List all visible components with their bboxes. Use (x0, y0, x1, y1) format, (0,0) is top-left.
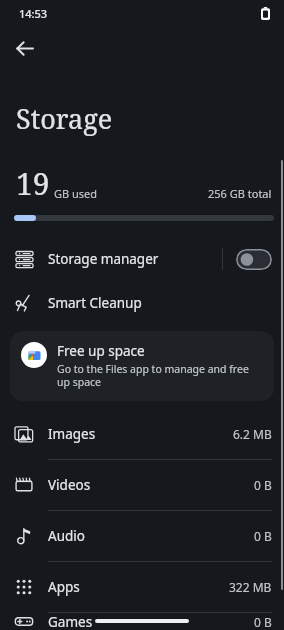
button[interactable]: Storage manager toggle (236, 249, 272, 270)
staticText: 0 B (254, 528, 272, 544)
staticText: 322 MB (229, 579, 272, 595)
staticText: Apps (48, 578, 80, 596)
staticText: Storage manager (48, 250, 159, 268)
button[interactable]: Games (0, 613, 284, 630)
staticText: 0 B (254, 477, 272, 493)
staticText: GB used (54, 186, 98, 201)
button[interactable]: Audio (0, 511, 284, 561)
button[interactable]: Videos (0, 460, 284, 510)
staticText: Games (48, 613, 93, 630)
staticText: 14:53 (19, 6, 48, 21)
staticText: 0 B (254, 614, 272, 630)
button[interactable]: Apps (0, 562, 284, 612)
staticText: 6.2 MB (233, 426, 272, 442)
staticText: 256 GB total (208, 186, 272, 201)
button[interactable]: Images (0, 409, 284, 459)
staticText: Storage (16, 100, 113, 137)
staticText: Free up space (57, 342, 145, 360)
staticText: Images (48, 425, 96, 443)
button[interactable]: Smart Cleanup (0, 281, 284, 325)
staticText: 19 (16, 163, 50, 204)
staticText: Go to the Files app to manage and free u… (57, 362, 260, 389)
button[interactable]: Free up space (10, 331, 274, 401)
button[interactable]: Storage manager (0, 237, 284, 281)
button[interactable]: Back (7, 31, 41, 65)
staticText: Videos (48, 476, 91, 494)
staticText: Smart Cleanup (48, 294, 142, 312)
staticText: Audio (48, 527, 85, 545)
